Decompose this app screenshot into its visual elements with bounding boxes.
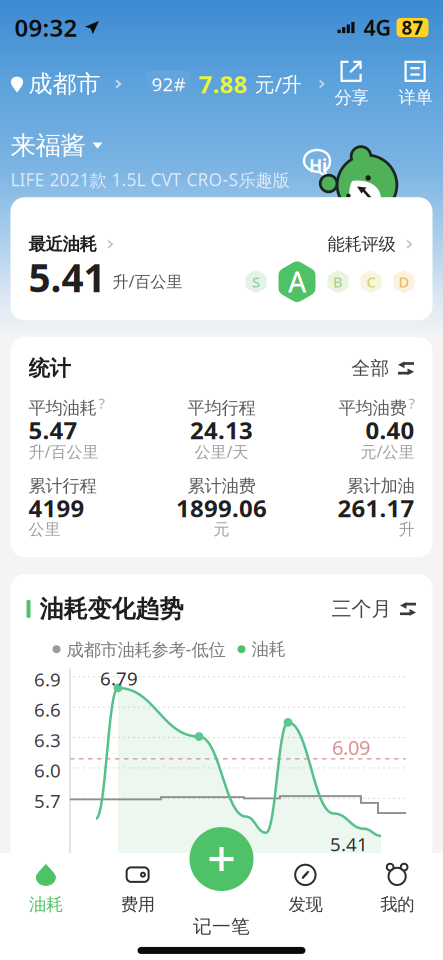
staticText: C	[366, 272, 375, 291]
staticText: 升/百公里	[112, 271, 182, 292]
staticText: 三个月	[331, 597, 391, 621]
button[interactable]: 油耗	[0, 853, 92, 915]
staticText: LIFE 2021款 1.5L CVT CRO-S乐趣版	[10, 168, 289, 191]
button[interactable]: 费用	[92, 853, 184, 915]
staticText: 详单	[398, 87, 432, 108]
button[interactable]: 我的	[351, 853, 443, 915]
staticText: 5.41	[330, 832, 368, 856]
staticText: 升/百公里	[28, 441, 98, 462]
staticText: 能耗评级	[327, 234, 395, 255]
staticText: 6.9	[34, 667, 61, 692]
staticText: 元/公里	[360, 441, 414, 462]
staticText: 平均油耗	[28, 397, 96, 419]
staticText: 6.09	[332, 734, 370, 760]
staticText: 累计油费	[187, 475, 255, 497]
staticText: 92#	[151, 72, 185, 96]
staticText: 油耗	[29, 894, 63, 915]
staticText: 6.6	[34, 697, 61, 722]
staticText: 发现	[288, 894, 322, 915]
staticText: S	[252, 272, 260, 291]
staticText: 公里/天	[194, 441, 248, 462]
staticText: 元/升	[254, 71, 301, 97]
button[interactable]: 记一笔	[189, 827, 253, 891]
button[interactable]: 发现	[259, 853, 351, 915]
staticText: 6.3	[34, 728, 61, 752]
staticText: 累计加油	[346, 475, 414, 497]
staticText: 09:32	[14, 12, 77, 43]
staticText: 元	[213, 520, 229, 539]
staticText: 6.0	[34, 758, 61, 783]
staticText: ?	[98, 393, 104, 413]
staticText: 成都市	[28, 69, 100, 99]
staticText: 成都市油耗参考-低位	[66, 638, 225, 661]
staticText: 累计行程	[28, 475, 96, 497]
staticText: 261.17	[337, 492, 414, 524]
button[interactable]: 详单	[398, 60, 432, 108]
staticText: 我的	[380, 894, 414, 915]
staticText: A	[288, 263, 306, 300]
staticText: 5.41	[28, 251, 105, 303]
staticText: 5.7	[34, 788, 61, 813]
staticText: 平均行程	[187, 397, 255, 419]
staticText: 油耗变化趋势	[39, 594, 183, 624]
staticText: 平均油费	[338, 397, 406, 419]
staticText: 24.13	[190, 414, 253, 446]
staticText: 费用	[121, 894, 155, 915]
staticText: Hi	[309, 154, 327, 177]
staticText: 统计	[28, 355, 70, 381]
staticText: 6.79	[100, 666, 138, 691]
staticText: 0.40	[365, 414, 414, 446]
staticText: ?	[408, 393, 414, 413]
staticText: 公里	[28, 520, 60, 539]
button[interactable]: 成都市	[10, 63, 123, 105]
staticText: 升	[398, 520, 414, 539]
staticText: B	[333, 272, 343, 291]
button[interactable]: 92#	[145, 62, 326, 106]
staticText: 7.88	[198, 68, 247, 100]
staticText: 记一笔	[193, 915, 250, 938]
button[interactable]: 最近油耗	[28, 235, 115, 254]
staticText: 油耗	[251, 639, 285, 660]
staticText: 最近油耗	[28, 234, 96, 255]
staticText: 分享	[334, 87, 368, 108]
staticText: 1899.06	[176, 492, 267, 524]
button[interactable]: 能耗评级	[327, 235, 414, 254]
staticText: D	[398, 272, 409, 291]
staticText: 全部	[351, 357, 389, 380]
button[interactable]: 分享	[334, 60, 368, 108]
staticText: 5.47	[28, 414, 77, 446]
staticText: 4G	[363, 13, 390, 42]
staticText: 87	[401, 15, 423, 40]
button[interactable]: 三个月	[331, 597, 416, 621]
staticText: 4199	[28, 492, 84, 524]
staticText: 来福酱	[10, 130, 85, 161]
button[interactable]: 来福酱	[10, 130, 432, 161]
button[interactable]: 全部	[351, 357, 414, 380]
